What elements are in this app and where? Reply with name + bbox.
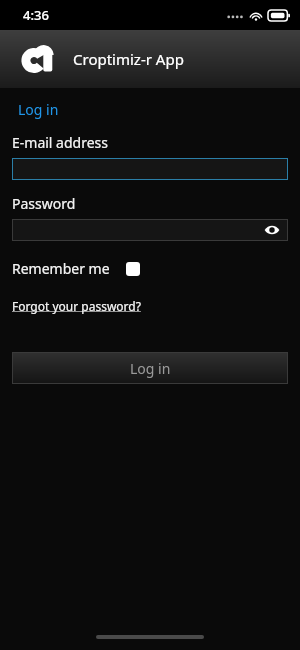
staticText: Croptimiz-r App (73, 49, 184, 69)
button[interactable] (12, 158, 288, 180)
button[interactable]: Log in (12, 352, 288, 384)
staticText: Password (12, 194, 76, 213)
staticText: E-mail address (12, 133, 108, 152)
button[interactable]: Log in (12, 98, 65, 121)
button[interactable]: Forgot your password? (12, 298, 141, 314)
button[interactable]: Remember me (12, 257, 140, 280)
staticText: 4:36 (23, 6, 49, 24)
button[interactable]: Show password (12, 219, 288, 241)
staticText: Remember me (12, 259, 110, 278)
staticText: Forgot your password? (12, 298, 141, 314)
staticText: Log in (130, 359, 171, 378)
button[interactable]: Show password (262, 220, 282, 240)
staticText: Log in (18, 100, 59, 119)
